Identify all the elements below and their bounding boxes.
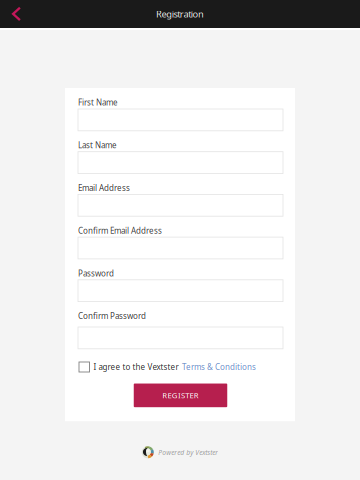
staticText: Email Address bbox=[78, 182, 130, 193]
staticText: REGISTER bbox=[162, 390, 199, 401]
button[interactable]: REGISTER bbox=[134, 383, 227, 407]
staticText: Powered by Vextster bbox=[158, 448, 218, 457]
staticText: I agree to the Vextster bbox=[93, 362, 178, 372]
staticText: First Name bbox=[78, 97, 118, 108]
staticText: Last Name bbox=[78, 140, 117, 151]
staticText: Registration bbox=[156, 8, 204, 20]
staticText: Password bbox=[78, 268, 114, 279]
staticText: Confirm Password bbox=[78, 311, 146, 321]
button[interactable]: I agree to the Vextster bbox=[78, 362, 283, 372]
staticText: Confirm Email Address bbox=[78, 225, 162, 236]
staticText: Terms & Conditions bbox=[182, 362, 256, 372]
button[interactable]: Back bbox=[0, 0, 49, 28]
